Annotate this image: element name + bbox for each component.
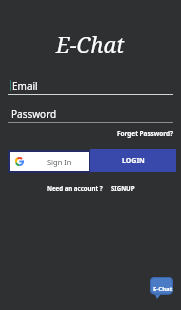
staticText: Password (11, 107, 57, 121)
button[interactable]: SIGNUP (111, 184, 135, 192)
staticText: Need an account ? (47, 184, 103, 192)
button[interactable]: Sign In (10, 152, 89, 171)
staticText: Sign In (47, 157, 72, 167)
staticText: SIGNUP (111, 184, 135, 192)
button[interactable]: E-Chat logo (150, 277, 173, 299)
staticText: E-Chat (153, 285, 173, 293)
staticText: E-Chat (56, 29, 125, 59)
button[interactable]: Forget Password? (117, 129, 174, 138)
staticText: Email (12, 79, 38, 93)
staticText: Forget Password? (117, 129, 174, 138)
button[interactable]: LOGIN (90, 149, 176, 172)
staticText: LOGIN (122, 156, 145, 166)
